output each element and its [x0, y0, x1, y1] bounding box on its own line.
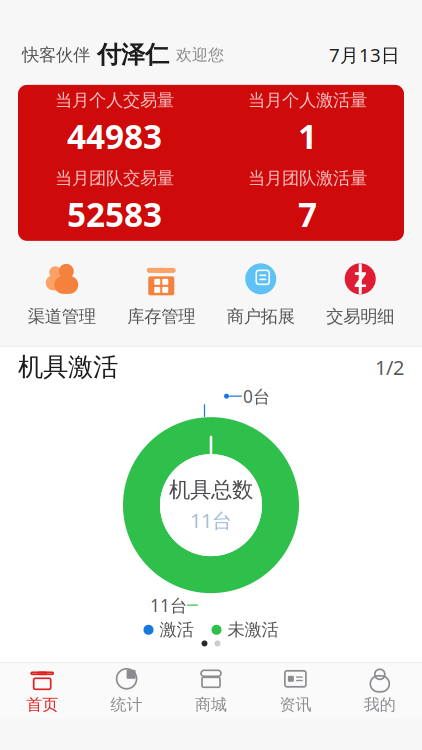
staticText: 渠道管理 [28, 306, 96, 327]
staticText: 交易明细 [326, 306, 394, 327]
staticText: 7 [298, 192, 317, 236]
button[interactable]: 首页 [0, 663, 84, 719]
staticText: 当月个人交易量 [55, 90, 174, 111]
staticText: 未激活 [227, 619, 278, 640]
staticText: 库存管理 [127, 306, 195, 327]
button[interactable]: 商城 [169, 663, 253, 719]
staticText: 52583 [67, 192, 162, 236]
staticText: 1/2 [375, 354, 404, 380]
staticText: 统计 [111, 695, 143, 714]
staticText: 1 [298, 114, 317, 158]
staticText: 0台 [243, 385, 270, 408]
staticText: 激活 [159, 619, 193, 640]
staticText: 当月个人激活量 [248, 90, 367, 111]
button[interactable]: 商户拓展 [211, 257, 310, 332]
button[interactable]: 资讯 [253, 663, 338, 719]
staticText: Z [354, 265, 366, 293]
staticText: 商户拓展 [227, 306, 295, 327]
button[interactable]: 我的 [338, 663, 422, 719]
staticText: 快客伙伴 [22, 44, 90, 65]
staticText: 付泽仁 [90, 40, 176, 70]
button[interactable]: 统计 [84, 663, 169, 719]
staticText: 44983 [67, 114, 162, 158]
staticText: 11台 [150, 594, 187, 617]
staticText: 首页 [26, 695, 58, 714]
staticText: 当月团队交易量 [55, 168, 174, 189]
staticText: 11台 [190, 507, 232, 534]
button[interactable]: Z [310, 257, 410, 332]
staticText: 机具总数 [169, 477, 253, 503]
button[interactable]: 库存管理 [111, 257, 211, 332]
staticText: 我的 [364, 695, 396, 714]
staticText: 商城 [195, 695, 227, 714]
staticText: 资讯 [279, 695, 311, 714]
button[interactable]: 渠道管理 [12, 257, 111, 332]
staticText: 7月13日 [329, 42, 400, 67]
staticText: 机具激活 [18, 352, 118, 383]
staticText: 当月团队激活量 [248, 168, 367, 189]
staticText: 欢迎您 [176, 45, 224, 65]
